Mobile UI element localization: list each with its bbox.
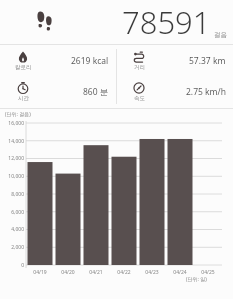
other: Time bbox=[17, 82, 29, 94]
staticText: 860 분 bbox=[83, 86, 109, 98]
other: Speed bbox=[133, 82, 145, 94]
other: Steps bbox=[33, 9, 57, 33]
staticText: 04/24 bbox=[171, 269, 189, 276]
staticText: 14,000 bbox=[1, 138, 24, 145]
staticText: 2,000 bbox=[1, 244, 24, 251]
staticText: 거리 bbox=[134, 64, 145, 71]
staticText: 04/20 bbox=[59, 269, 77, 276]
staticText: 칼로리 bbox=[15, 64, 32, 71]
button[interactable]: Calories bbox=[0, 45, 116, 76]
staticText: 16,000 bbox=[1, 120, 24, 127]
staticText: 4,000 bbox=[1, 226, 24, 233]
staticText: 6,000 bbox=[1, 209, 24, 216]
staticText: (단위: 일) bbox=[186, 276, 207, 283]
other: Calories bbox=[17, 51, 29, 63]
staticText: 10,000 bbox=[1, 173, 24, 180]
staticText: 04/21 bbox=[87, 269, 105, 276]
staticText: 속도 bbox=[134, 95, 145, 102]
staticText: 2619 kcal bbox=[71, 55, 109, 67]
button[interactable]: Time bbox=[0, 76, 116, 107]
staticText: 04/22 bbox=[115, 269, 133, 276]
staticText: (단위: 걸음) bbox=[5, 111, 31, 118]
staticText: 0 bbox=[1, 262, 24, 269]
button[interactable]: Steps bbox=[0, 0, 233, 44]
staticText: 57.37 km bbox=[189, 55, 226, 67]
staticText: 78591 bbox=[122, 1, 211, 43]
staticText: 04/19 bbox=[31, 269, 49, 276]
staticText: 04/23 bbox=[143, 269, 161, 276]
other: Distance bbox=[133, 51, 145, 63]
button[interactable]: Speed bbox=[116, 76, 233, 107]
staticText: 걸음 bbox=[214, 31, 227, 39]
staticText: 시간 bbox=[18, 95, 29, 102]
staticText: 12,000 bbox=[1, 155, 24, 162]
staticText: 2.75 km/h bbox=[186, 86, 226, 98]
button[interactable]: Distance bbox=[116, 45, 233, 76]
staticText: 8,000 bbox=[1, 191, 24, 198]
staticText: 04/25 bbox=[199, 269, 217, 276]
